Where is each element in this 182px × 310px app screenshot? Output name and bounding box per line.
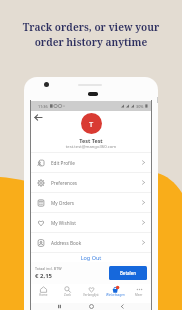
staticText: Test Test [31,137,151,144]
button[interactable]: Verlanglijst [79,284,103,303]
staticText: Home [39,293,48,297]
staticText: T [89,119,94,129]
staticText: Betalen [120,270,137,276]
staticText: Meer [135,293,143,297]
staticText: Totaal incl. BTW [35,266,62,271]
button[interactable]: Preferences [31,173,151,193]
button[interactable]: Back [33,112,44,123]
button[interactable]: Edit Profile [31,153,151,173]
button[interactable]: Address Book [31,233,151,253]
button[interactable]: Zoek [55,284,79,303]
staticText: test.test@mango360.com [31,144,151,150]
staticText: Winkelwagen [106,293,125,297]
staticText: Edit Profile [51,160,75,166]
button[interactable]: My Orders [31,193,151,213]
button[interactable]: Winkelwagen [103,284,127,303]
button[interactable]: My Wishlist [31,213,151,233]
staticText: My Wishlist [51,220,76,226]
staticText: My Orders [51,200,75,206]
button[interactable]: Betalen [109,266,147,280]
staticText: 11:36 [38,104,48,109]
staticText: Track orders, or view your order history… [0,20,182,49]
button[interactable]: Log Out [31,254,151,261]
staticText: Verlanglijst [83,293,99,297]
button[interactable]: Meer [127,284,151,303]
button[interactable]: Home [31,284,55,303]
staticText: Preferences [51,180,78,186]
staticText: Address Book [51,240,82,246]
staticText: Zoek [64,293,71,297]
staticText: € 2,15 [35,272,52,280]
staticText: 30% [136,104,144,109]
